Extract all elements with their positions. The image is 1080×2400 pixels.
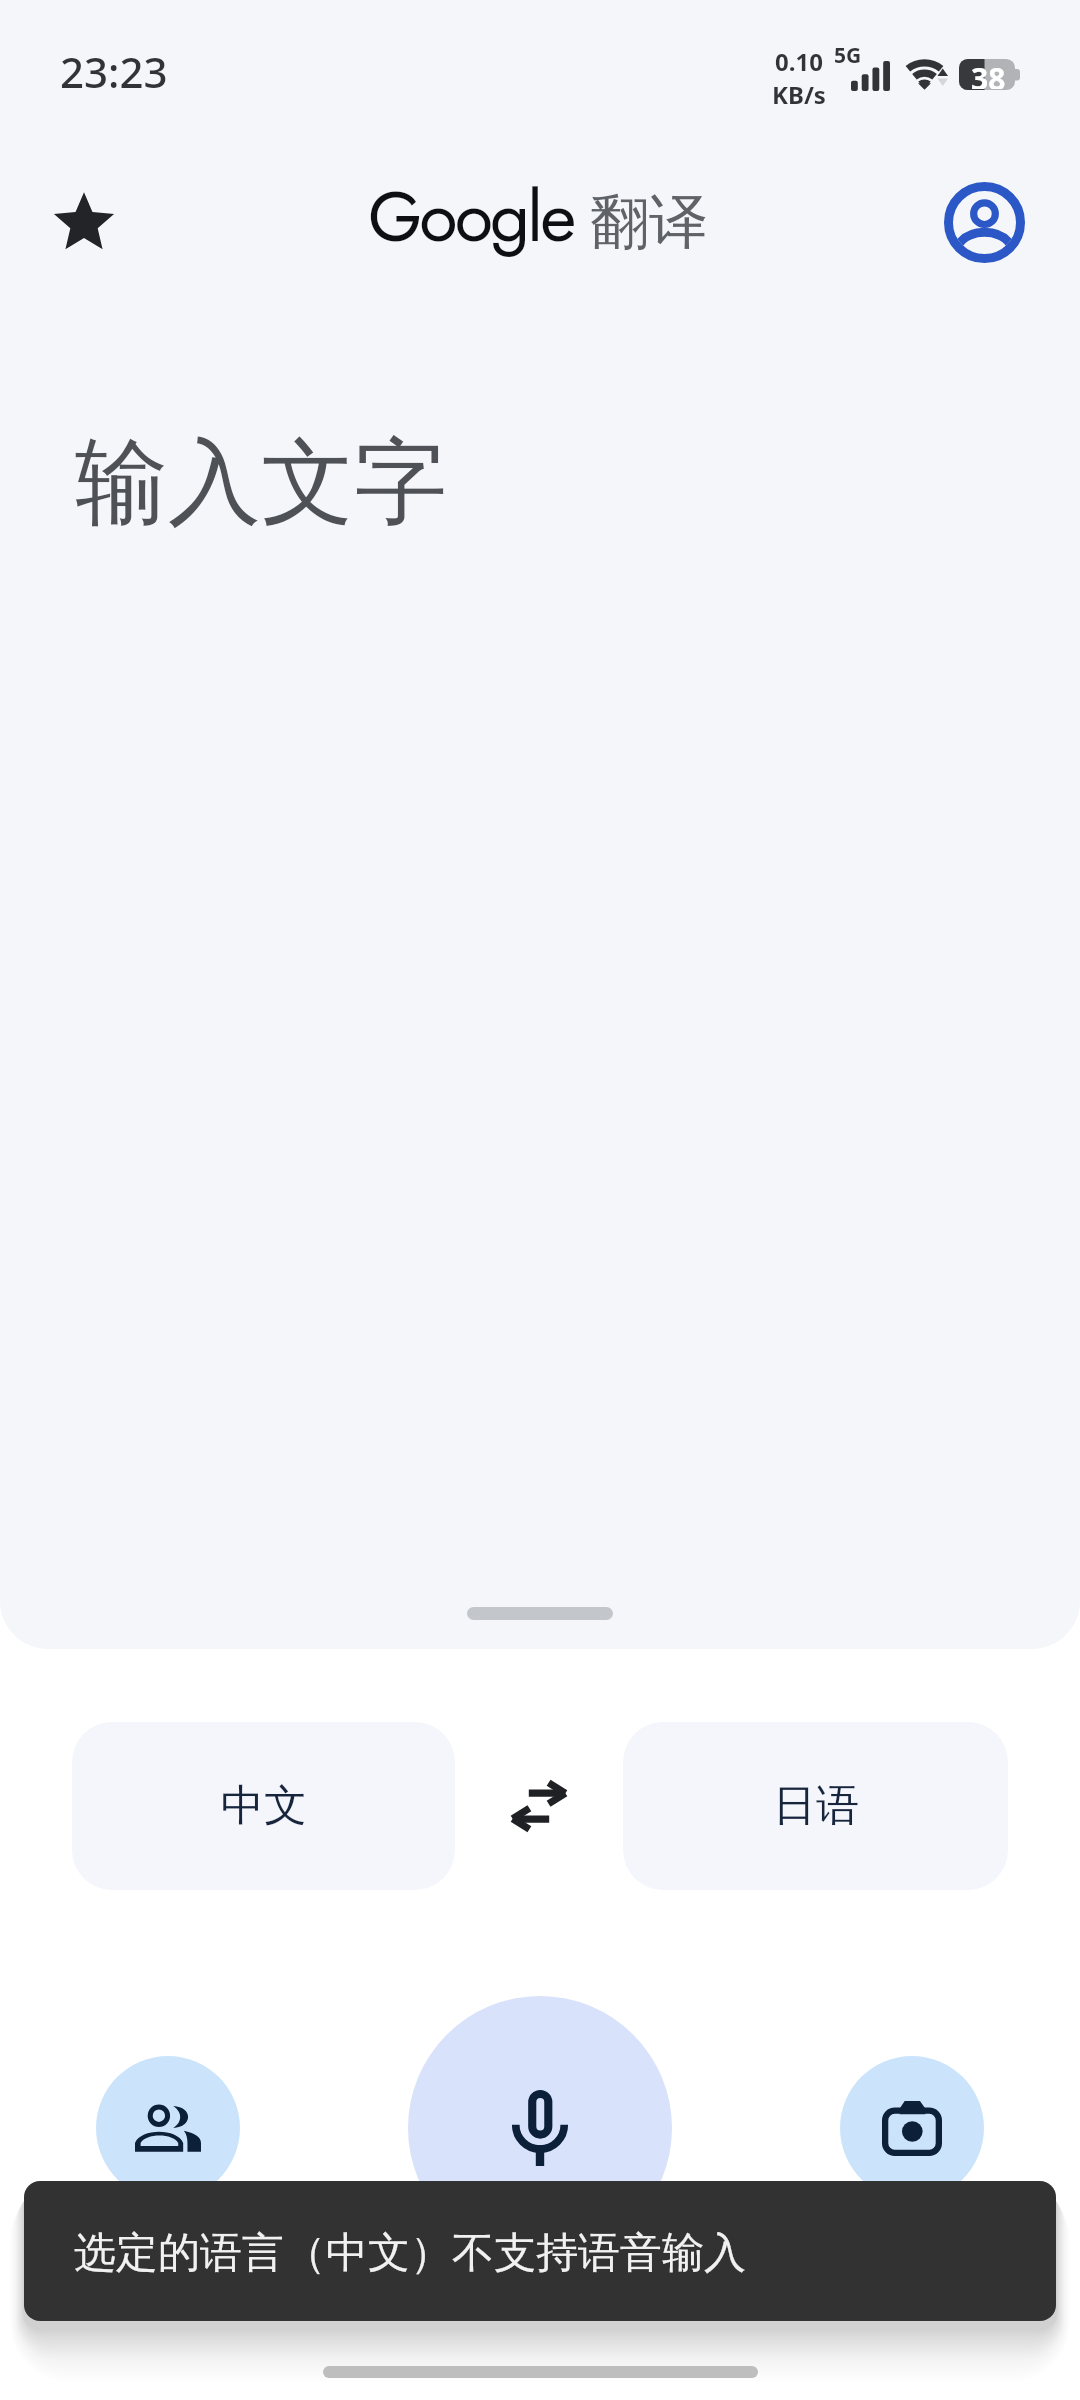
staticText: Google — [368, 166, 574, 267]
button[interactable]: Camera — [840, 2056, 984, 2200]
staticText: 0.10 — [775, 45, 823, 78]
staticText: 38 — [971, 58, 1006, 89]
staticText: 翻译 — [590, 185, 708, 259]
button[interactable]: 日语 — [623, 1722, 1008, 1890]
button[interactable]: Account — [928, 166, 1040, 278]
staticText: 5G — [834, 41, 862, 70]
button[interactable]: 中文 — [72, 1722, 455, 1890]
staticText: KB/s — [772, 78, 826, 111]
button[interactable]: Conversation — [96, 2056, 240, 2200]
staticText: 日语 — [773, 1779, 859, 1833]
button[interactable]: 选定的语言（中文）不支持语音输入 — [24, 2181, 1056, 2321]
staticText: 输入文字 — [75, 424, 447, 541]
staticText: 23:23 — [60, 43, 168, 100]
staticText: 选定的语言（中文）不支持语音输入 — [74, 2227, 746, 2280]
button[interactable]: Swap languages — [455, 1722, 623, 1890]
button[interactable]: Saved translations — [28, 166, 140, 278]
button[interactable]: Voice input — [408, 1996, 672, 2260]
staticText: 中文 — [221, 1779, 307, 1833]
